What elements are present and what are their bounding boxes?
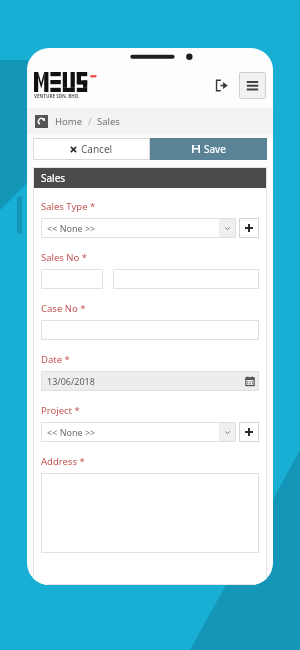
staticText: VENTURE SDN. BHD. bbox=[34, 93, 80, 99]
button[interactable]: Cancel bbox=[33, 138, 150, 160]
staticText: Sales No * bbox=[41, 251, 88, 264]
other: Pick date bbox=[241, 371, 259, 391]
staticText: Sales bbox=[97, 115, 120, 128]
staticText: Date * bbox=[41, 353, 70, 366]
staticText: << None >> bbox=[47, 426, 96, 438]
button[interactable]: Menu bbox=[239, 72, 266, 99]
button[interactable]: << None >> bbox=[41, 218, 236, 238]
staticText: << None >> bbox=[47, 222, 96, 234]
button[interactable]: << None >> bbox=[41, 422, 236, 442]
button[interactable]: Save bbox=[150, 138, 267, 160]
staticText: Case No * bbox=[41, 302, 86, 315]
staticText: Save bbox=[204, 142, 226, 156]
staticText: / bbox=[88, 115, 92, 128]
button[interactable] bbox=[113, 269, 259, 289]
staticText: Address * bbox=[41, 455, 85, 468]
button[interactable] bbox=[41, 269, 103, 289]
staticText: 13/06/2018 bbox=[47, 375, 95, 387]
button[interactable] bbox=[41, 320, 259, 340]
button[interactable] bbox=[41, 473, 259, 553]
staticText: Sales Type * bbox=[41, 200, 96, 213]
staticText: Sales bbox=[41, 171, 66, 185]
button[interactable]: Add bbox=[239, 422, 259, 442]
button[interactable]: Home bbox=[55, 115, 83, 128]
button[interactable]: Refresh bbox=[35, 115, 48, 128]
button[interactable]: 13/06/2018 bbox=[41, 371, 259, 391]
button[interactable]: Add bbox=[239, 218, 259, 238]
staticText: Cancel bbox=[81, 142, 113, 156]
staticText: Project * bbox=[41, 404, 80, 417]
button[interactable]: Logout bbox=[211, 75, 231, 95]
